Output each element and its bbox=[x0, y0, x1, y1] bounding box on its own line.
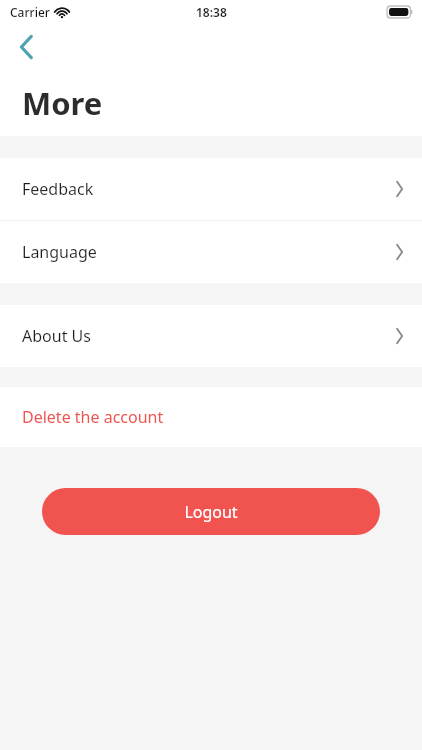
staticText: About Us bbox=[22, 325, 394, 347]
staticText: More bbox=[22, 82, 103, 124]
button[interactable]: About Us bbox=[0, 305, 422, 367]
staticText: 18:38 bbox=[196, 4, 227, 20]
button[interactable]: Language bbox=[0, 221, 422, 283]
button[interactable]: Delete the account bbox=[0, 387, 422, 447]
button[interactable]: Logout bbox=[42, 488, 380, 535]
button[interactable]: Feedback bbox=[0, 158, 422, 220]
staticText: Delete the account bbox=[22, 406, 164, 428]
staticText: Carrier bbox=[10, 4, 50, 20]
staticText: Logout bbox=[184, 501, 238, 523]
button[interactable]: Back bbox=[8, 29, 44, 65]
staticText: Feedback bbox=[22, 178, 394, 200]
staticText: Language bbox=[22, 241, 394, 263]
